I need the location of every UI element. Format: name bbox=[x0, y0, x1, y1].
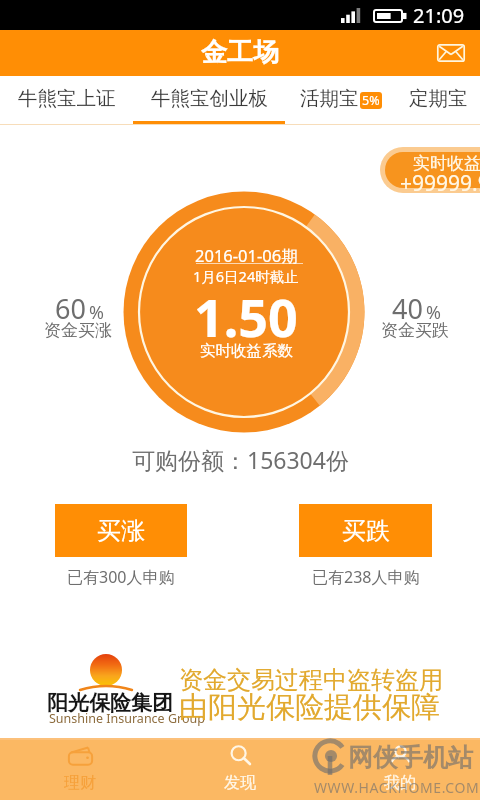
staticText: 理财 bbox=[64, 773, 96, 793]
staticText: 资金买涨 bbox=[44, 320, 112, 341]
staticText: 我的 bbox=[384, 773, 416, 793]
staticText: 1月6日24时截止 bbox=[193, 266, 299, 286]
button[interactable]: 买跌 bbox=[299, 504, 432, 557]
button[interactable]: 我的 bbox=[320, 738, 480, 800]
staticText: 已有300人申购 bbox=[67, 566, 175, 588]
button[interactable]: 买涨 bbox=[55, 504, 187, 557]
staticText: 已有238人申购 bbox=[312, 566, 420, 588]
button[interactable] bbox=[385, 152, 480, 188]
staticText: % bbox=[426, 300, 441, 325]
staticText: 21:09 bbox=[413, 2, 465, 29]
staticText: 买跌 bbox=[342, 516, 390, 546]
staticText: 实时收益 bbox=[413, 153, 480, 174]
button[interactable]: 活期宝 bbox=[285, 76, 396, 125]
staticText: 40 bbox=[392, 290, 423, 327]
button[interactable]: 发现 bbox=[160, 738, 320, 800]
staticText: 2016-01-06期 bbox=[195, 244, 298, 267]
button[interactable]: Messages bbox=[434, 36, 468, 70]
button[interactable]: 牛熊宝上证 bbox=[0, 76, 133, 125]
staticText: 定期宝 bbox=[409, 86, 468, 111]
staticText: Sunshine Insurance Group bbox=[49, 710, 205, 727]
staticText: 网侠手机站 bbox=[348, 742, 473, 773]
staticText: 发现 bbox=[224, 773, 256, 793]
staticText: 买涨 bbox=[97, 516, 145, 546]
staticText: +99999.99 bbox=[400, 169, 480, 198]
staticText: 牛熊宝上证 bbox=[18, 86, 116, 111]
staticText: 5% bbox=[362, 92, 380, 109]
staticText: 阳光保险集团 bbox=[47, 690, 173, 716]
staticText: 实时收益系数 bbox=[200, 341, 293, 361]
staticText: 60 bbox=[55, 290, 86, 327]
button[interactable]: 定期宝 bbox=[396, 76, 480, 125]
staticText: 资金买跌 bbox=[381, 320, 449, 341]
staticText: 资金交易过程中盗转盗用 bbox=[179, 665, 443, 695]
staticText: 牛熊宝创业板 bbox=[151, 86, 268, 111]
button[interactable]: 理财 bbox=[0, 738, 160, 800]
staticText: 活期宝 bbox=[300, 86, 359, 111]
staticText: 可购份额：156304份 bbox=[132, 444, 349, 475]
staticText: WWW.HACKHOME.COM bbox=[314, 778, 480, 797]
button[interactable]: 牛熊宝创业板 bbox=[133, 76, 285, 125]
staticText: % bbox=[89, 300, 104, 325]
staticText: 1.50 bbox=[194, 281, 298, 352]
staticText: 由阳光保险提供保障 bbox=[179, 689, 440, 726]
staticText: 金工场 bbox=[201, 36, 279, 69]
